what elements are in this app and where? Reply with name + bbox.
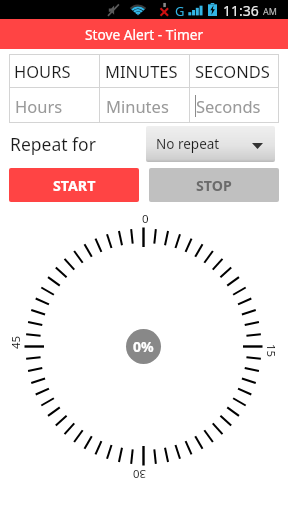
staticText: No repeat (156, 135, 220, 153)
button[interactable]: Seconds (190, 88, 279, 123)
staticText: Hours (15, 95, 63, 117)
button[interactable]: 0% (126, 329, 161, 364)
staticText: Minutes (106, 95, 169, 117)
staticText: STOP (196, 176, 232, 195)
button[interactable]: Hours (9, 88, 99, 123)
staticText: 30 (132, 466, 146, 482)
staticText: MINUTES (105, 60, 178, 82)
button[interactable]: MINUTES (100, 54, 189, 87)
staticText: 0 (142, 211, 149, 227)
button[interactable]: START (9, 168, 139, 202)
other: Sync error (158, 1, 172, 17)
staticText: Stove Alert - Timer (85, 25, 204, 44)
other: Ringer silenced (106, 3, 120, 17)
staticText: START (53, 176, 96, 195)
staticText: 0% (133, 337, 154, 356)
staticText: HOURS (14, 60, 71, 82)
staticText: AM (263, 5, 277, 17)
button[interactable]: SECONDS (190, 54, 279, 87)
staticText: SECONDS (195, 60, 270, 82)
staticText: 45 (8, 335, 24, 349)
other: Battery charging (208, 3, 217, 16)
button[interactable]: Minutes (100, 88, 189, 123)
staticText: G (175, 2, 185, 20)
staticText: 15 (263, 344, 279, 358)
other: Mobile signal strength (188, 4, 203, 16)
other: Wi-Fi signal (128, 3, 148, 16)
staticText: Seconds (196, 95, 261, 117)
button[interactable]: No repeat (146, 126, 275, 162)
button[interactable]: HOURS (9, 54, 99, 87)
button[interactable]: STOP (149, 168, 279, 202)
staticText: 11:36 (223, 1, 259, 20)
staticText: Repeat for (10, 132, 96, 156)
